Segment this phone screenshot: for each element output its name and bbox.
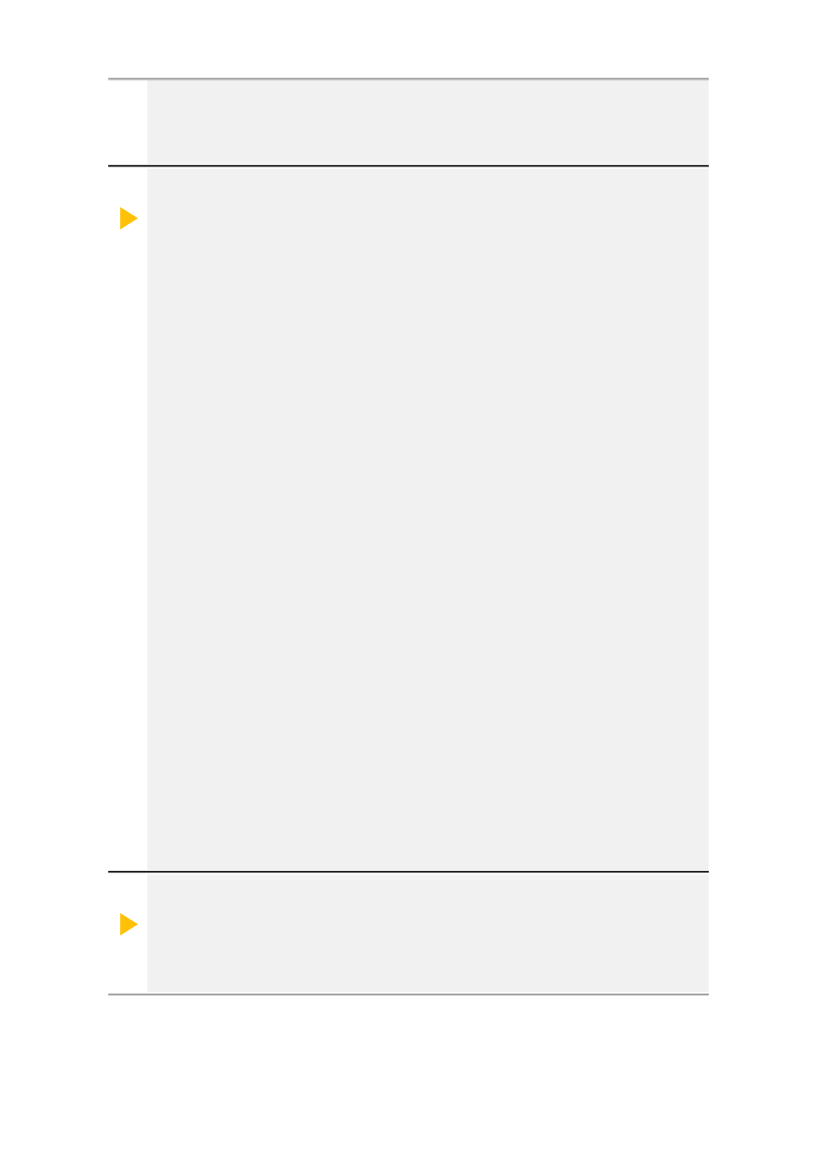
button[interactable]: Play second section	[108, 909, 138, 939]
button[interactable]	[0, 78, 827, 164]
button[interactable]: Play second section	[0, 870, 827, 993]
button[interactable]: Play first section	[108, 203, 138, 233]
button[interactable]: Play first section	[0, 164, 827, 870]
